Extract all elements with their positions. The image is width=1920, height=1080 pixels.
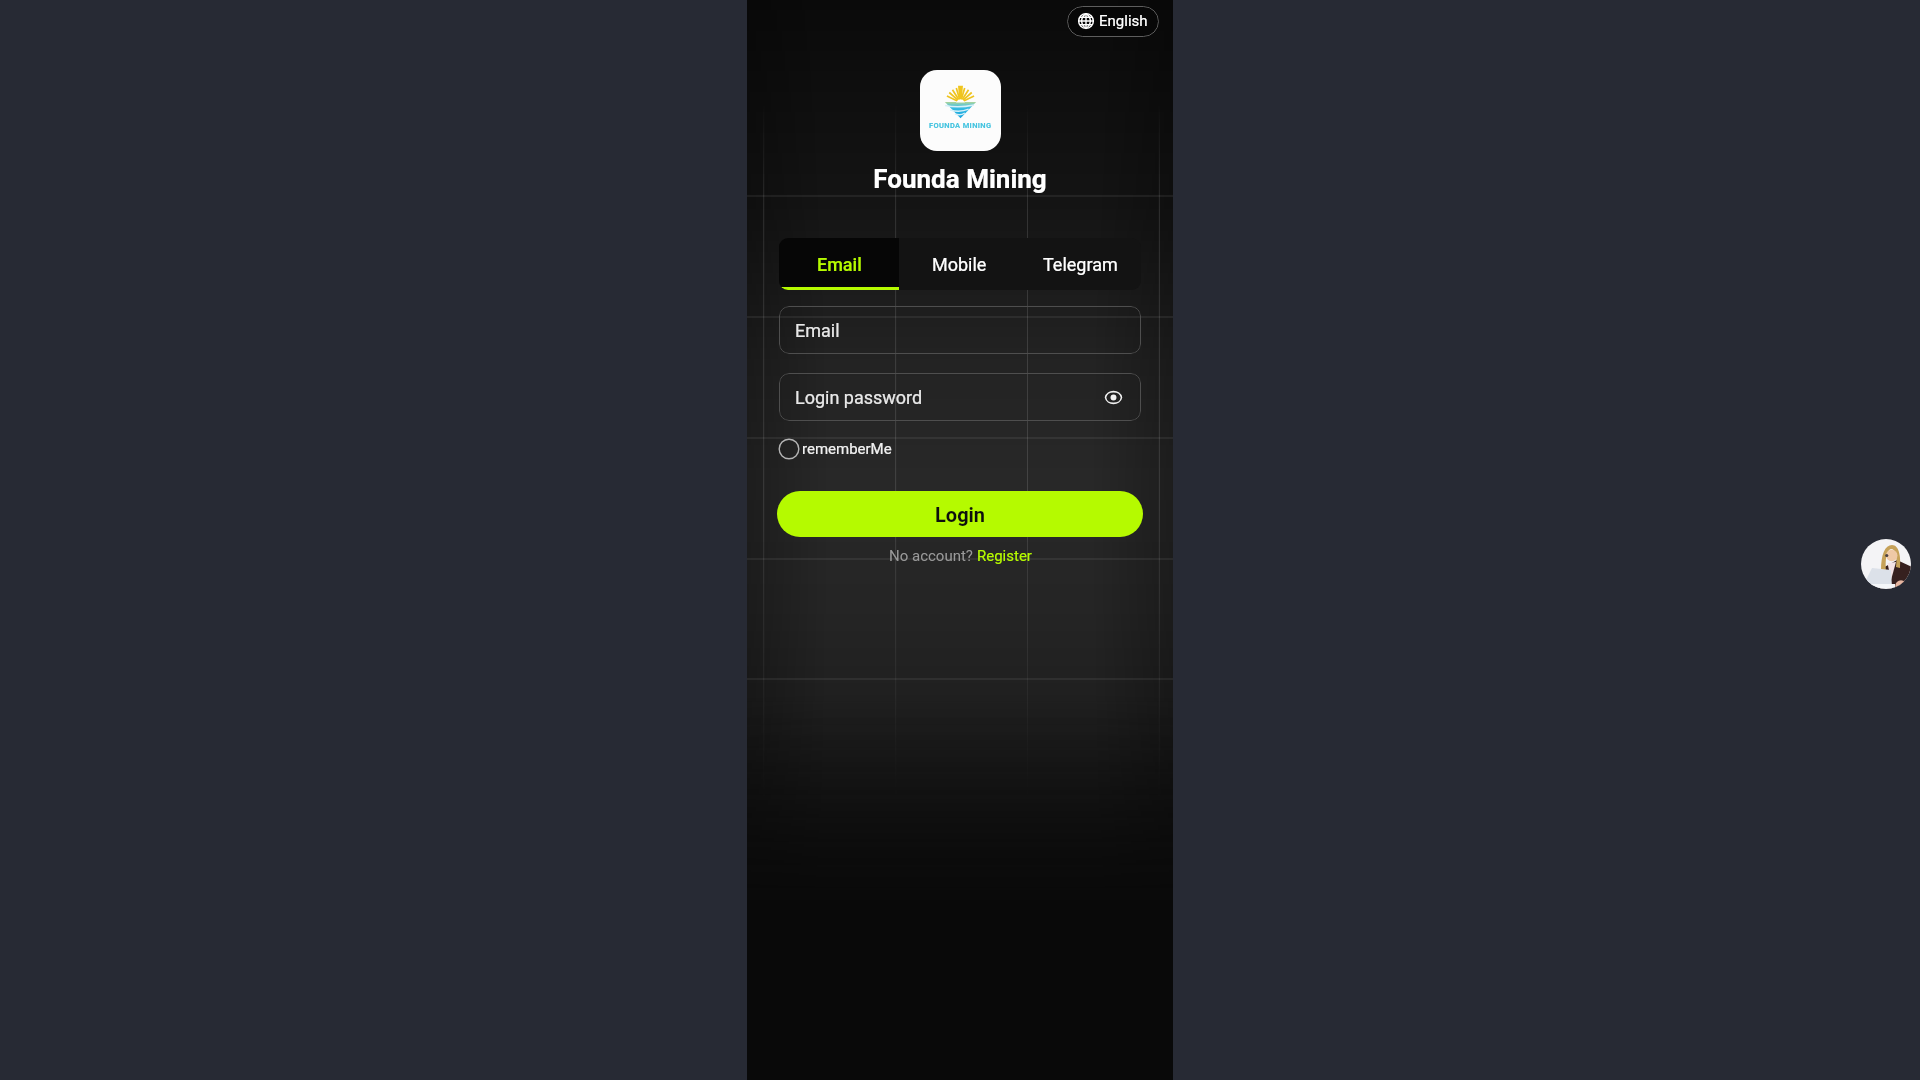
button[interactable]: Login password bbox=[779, 373, 1141, 421]
button[interactable]: English bbox=[1067, 6, 1159, 37]
button[interactable]: Mobile bbox=[899, 238, 1020, 290]
button[interactable]: rememberMe bbox=[778, 438, 892, 460]
staticText: Login password bbox=[795, 387, 923, 408]
button[interactable]: Customer support bbox=[1861, 539, 1911, 589]
staticText: Mobile bbox=[932, 254, 987, 275]
button[interactable]: Email bbox=[779, 306, 1141, 354]
staticText: No account? bbox=[889, 547, 977, 565]
staticText: Login bbox=[935, 503, 986, 526]
button[interactable]: Register bbox=[977, 547, 1032, 565]
staticText: Email bbox=[795, 320, 840, 341]
button[interactable]: Telegram bbox=[1020, 238, 1141, 290]
button[interactable]: Email bbox=[779, 238, 899, 290]
staticText: Email bbox=[817, 254, 862, 275]
staticText: rememberMe bbox=[802, 440, 892, 458]
staticText: Founda Mining bbox=[747, 164, 1173, 194]
staticText: English bbox=[1099, 12, 1148, 30]
staticText: FOUNDA MINING bbox=[929, 121, 992, 130]
staticText: Telegram bbox=[1043, 254, 1118, 275]
button[interactable]: Login bbox=[777, 491, 1143, 537]
button[interactable]: Show password bbox=[1105, 389, 1122, 406]
